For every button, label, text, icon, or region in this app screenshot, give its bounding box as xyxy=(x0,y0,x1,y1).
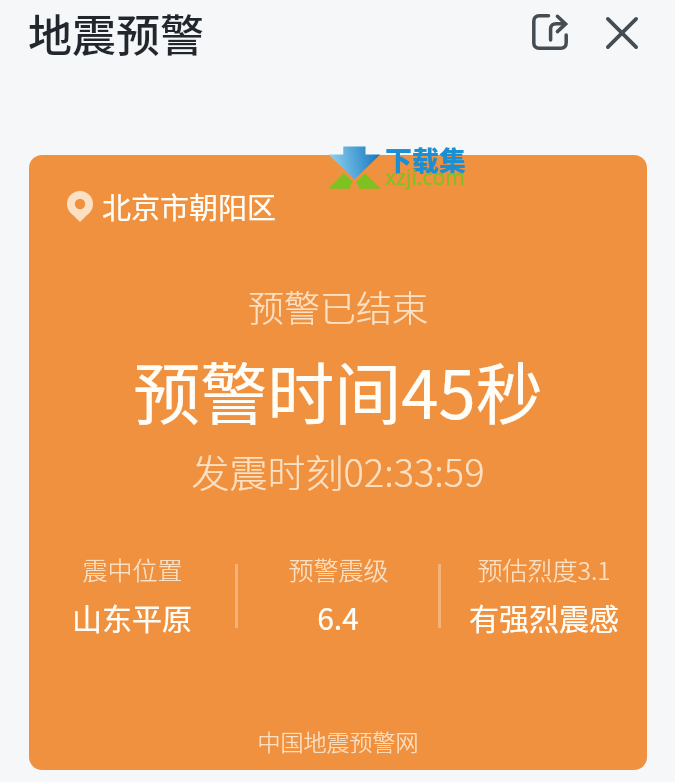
staticText: 6.4 xyxy=(317,595,359,638)
staticText: 震中位置 xyxy=(82,551,183,587)
button[interactable]: Close xyxy=(593,4,651,62)
staticText: 发震时刻02:33:59 xyxy=(29,443,647,498)
button[interactable]: 北京市朝阳区 xyxy=(29,155,647,770)
staticText: 下载集 xyxy=(385,140,466,179)
staticText: 地震预警 xyxy=(28,1,204,65)
staticText: 预估烈度3.1 xyxy=(477,551,611,587)
staticText: 预警震级 xyxy=(288,551,389,587)
staticText: 预警时间45秒 xyxy=(29,341,647,438)
button[interactable]: Share xyxy=(521,3,579,61)
staticText: 有强烈震感 xyxy=(469,595,619,638)
staticText: 预警已结束 xyxy=(29,280,647,332)
staticText: xzji.com xyxy=(385,163,465,192)
staticText: 北京市朝阳区 xyxy=(102,185,277,227)
staticText: 中国地震预警网 xyxy=(29,724,647,757)
staticText: 山东平原 xyxy=(72,595,192,638)
